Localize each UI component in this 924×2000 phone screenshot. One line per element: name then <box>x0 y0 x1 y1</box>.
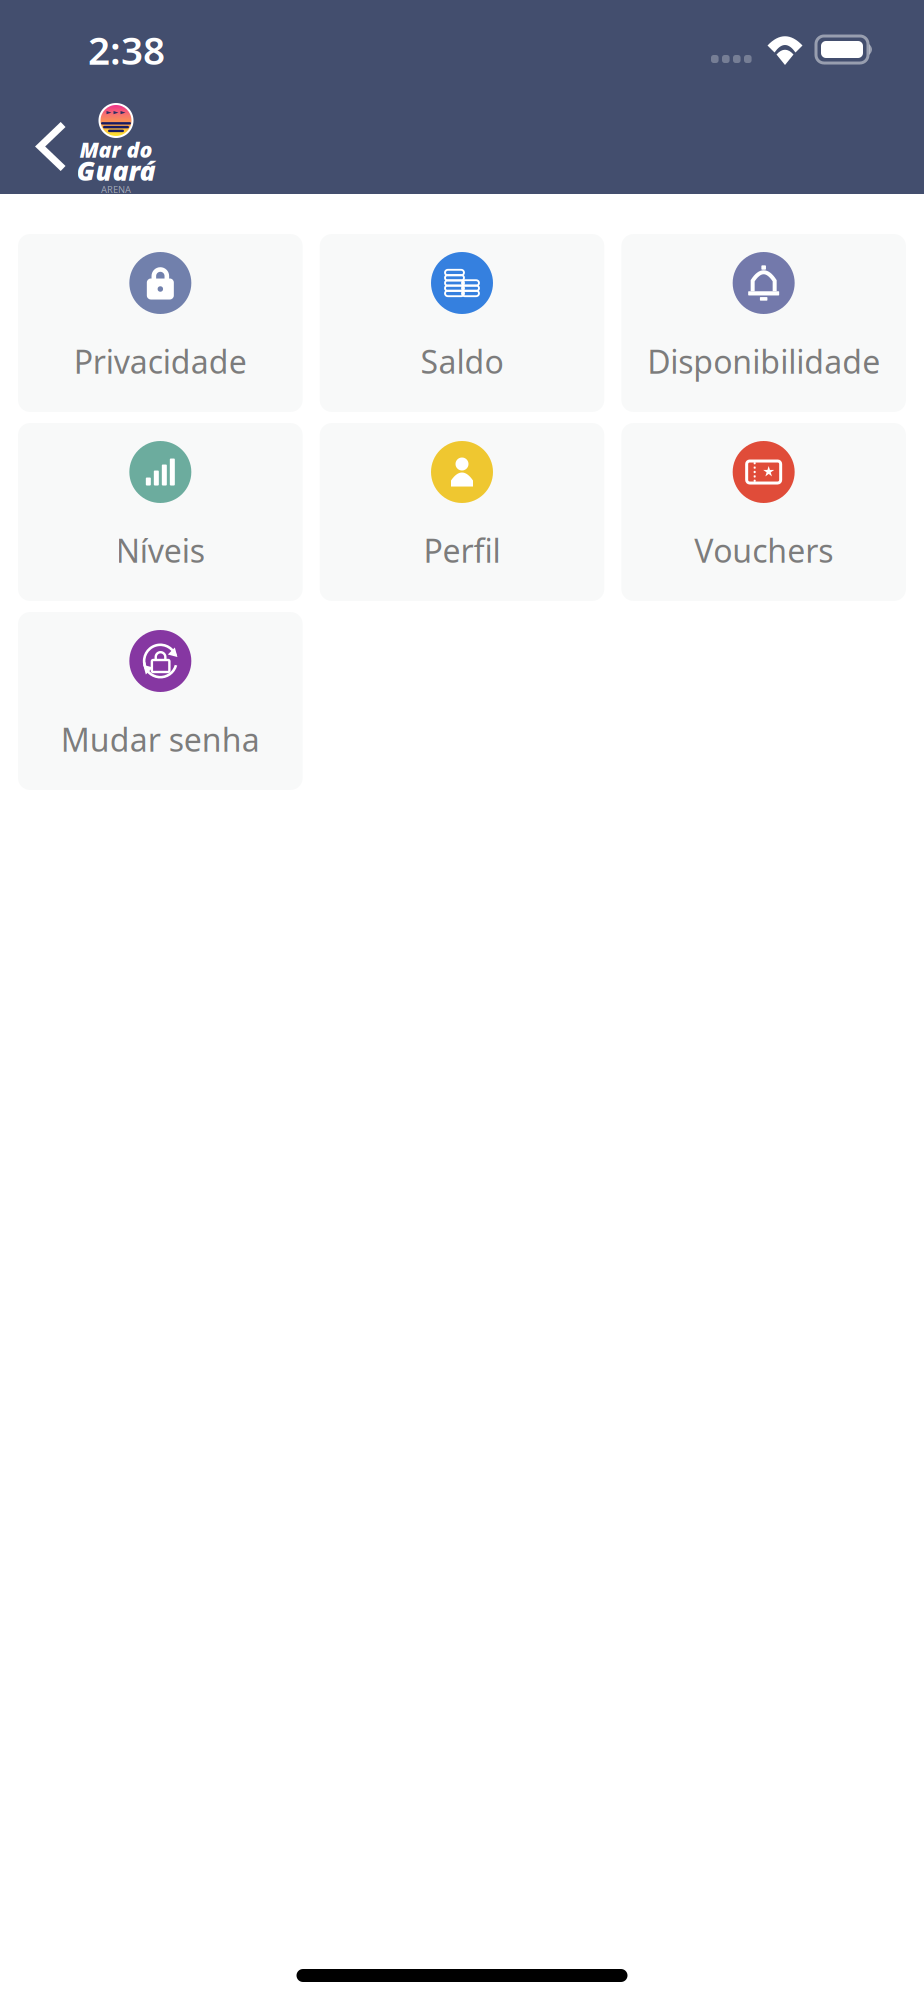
staticText: Mudar senha <box>61 718 260 760</box>
staticText: Saldo <box>420 340 503 382</box>
staticText: Perfil <box>423 529 500 571</box>
button[interactable]: Disponibilidade <box>621 234 906 412</box>
staticText: Mar do <box>79 135 152 164</box>
staticText: Privacidade <box>74 340 247 382</box>
staticText: Guará <box>76 153 155 188</box>
button[interactable]: Back <box>20 104 84 189</box>
staticText: ARENA <box>101 183 131 196</box>
staticText: Vouchers <box>694 529 833 571</box>
button[interactable]: Mudar senha <box>18 612 303 790</box>
staticText: 2:38 <box>88 24 165 75</box>
button[interactable]: Perfil <box>320 423 604 601</box>
staticText: Disponibilidade <box>647 340 880 382</box>
button[interactable]: Saldo <box>320 234 604 412</box>
button[interactable]: Privacidade <box>18 234 303 412</box>
button[interactable]: Níveis <box>18 423 303 601</box>
button[interactable]: Vouchers <box>621 423 906 601</box>
staticText: Níveis <box>116 529 205 571</box>
